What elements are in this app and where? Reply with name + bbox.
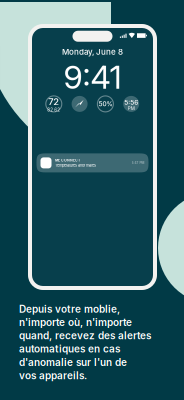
staticText: ME CONNECT xyxy=(55,158,80,162)
staticText: 50% xyxy=(98,100,112,108)
staticText: vos appareils. xyxy=(19,369,87,382)
staticText: quand, recevez des alertes xyxy=(19,330,151,342)
staticText: PM xyxy=(128,106,135,111)
staticText: 82 62 xyxy=(47,107,60,113)
staticText: Températures anormales xyxy=(55,163,96,168)
staticText: 5:47 PM xyxy=(131,161,144,165)
staticText: 9:41 xyxy=(63,58,121,96)
staticText: n'importe où, n'importe xyxy=(19,316,132,328)
staticText: d'anomalie sur l'un de xyxy=(19,356,127,368)
staticText: 5:56 xyxy=(124,98,138,106)
staticText: 72 xyxy=(48,96,59,108)
staticText: Monday, June 8 xyxy=(62,47,123,57)
staticText: Depuis votre moblie, xyxy=(19,303,120,315)
button[interactable]: ME CONNECT xyxy=(36,153,148,172)
staticText: automatiques en cas xyxy=(19,343,120,355)
